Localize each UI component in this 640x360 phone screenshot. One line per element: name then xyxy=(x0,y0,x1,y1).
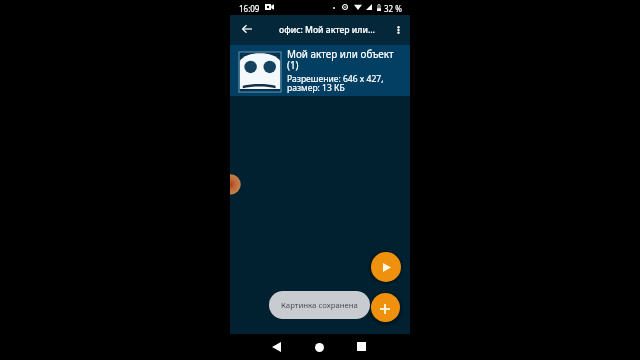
button[interactable]: Add xyxy=(371,293,400,322)
staticText: 16:09 xyxy=(239,3,260,14)
staticText: 32 % xyxy=(384,3,402,14)
button[interactable]: Play xyxy=(371,252,401,282)
staticText: Картинка сохранена xyxy=(281,300,358,311)
staticText: Мой актер или объект (1) xyxy=(287,47,395,72)
button[interactable]: Home xyxy=(302,334,336,360)
staticText: Разрешение: 646 x 427, размер: 13 КБ xyxy=(287,73,395,94)
button[interactable]: Мой актер или объект (1) xyxy=(230,45,410,96)
button[interactable]: Recents xyxy=(344,334,378,360)
button[interactable]: Back xyxy=(232,15,262,45)
staticText: офис: Мой актер или… xyxy=(279,24,375,36)
button[interactable]: Back xyxy=(259,334,293,360)
button[interactable]: More options xyxy=(388,15,408,45)
